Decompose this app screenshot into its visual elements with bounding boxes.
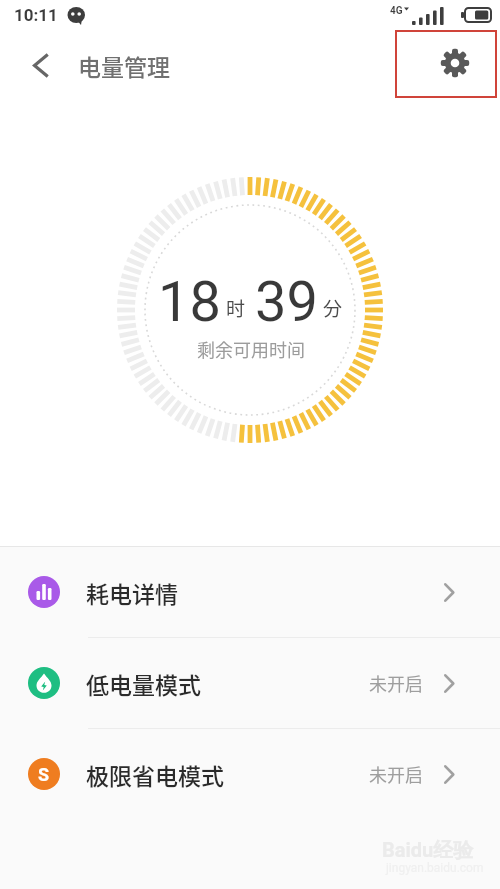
button[interactable]	[395, 30, 497, 98]
staticText: 39	[255, 269, 318, 335]
button[interactable]: 耗电详情	[0, 547, 500, 637]
staticText: 4G	[390, 5, 403, 17]
button[interactable]	[24, 45, 56, 85]
staticText: jingyan.baidu.com	[386, 861, 484, 875]
staticText: 分	[323, 294, 343, 322]
staticText: 耗电详情	[86, 576, 178, 609]
staticText: 时	[226, 294, 246, 322]
button[interactable]: 低电量模式	[0, 638, 500, 728]
staticText: 未开启	[369, 670, 423, 696]
staticText: S	[38, 764, 50, 785]
staticText: Baidu经验	[382, 838, 474, 863]
staticText: 极限省电模式	[86, 758, 224, 791]
staticText: 18	[158, 269, 221, 335]
staticText: 10:11	[14, 5, 58, 25]
staticText: 未开启	[369, 761, 423, 787]
staticText: 剩余可用时间	[197, 336, 305, 362]
staticText: 电量管理	[78, 49, 170, 82]
button[interactable]: S	[0, 729, 500, 819]
staticText: 低电量模式	[86, 667, 201, 700]
